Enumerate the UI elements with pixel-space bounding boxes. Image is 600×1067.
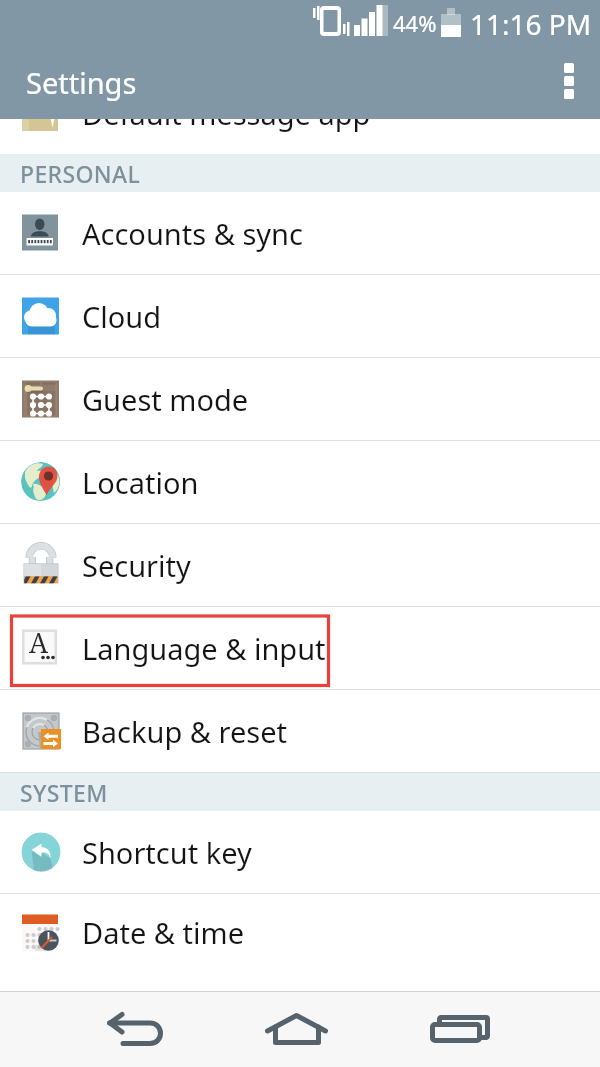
staticText: Settings: [26, 63, 137, 102]
button[interactable]: Recent apps: [424, 991, 496, 1067]
staticText: Date & time: [82, 913, 244, 952]
button[interactable]: Cloud: [0, 275, 600, 357]
staticText: Language & input: [82, 629, 326, 668]
staticText: Backup & reset: [82, 712, 288, 751]
button[interactable]: Security: [0, 524, 600, 606]
staticText: Accounts & sync: [82, 214, 303, 253]
button[interactable]: Shortcut key: [0, 811, 600, 893]
staticText: Shortcut key: [82, 833, 252, 872]
button[interactable]: Backup & reset: [0, 690, 600, 772]
button[interactable]: Default message app: [0, 72, 600, 154]
button[interactable]: A: [0, 607, 600, 689]
button[interactable]: Date & time: [0, 894, 600, 971]
button[interactable]: Guest mode: [0, 358, 600, 440]
staticText: 11:16 PM: [470, 5, 592, 43]
button[interactable]: Accounts & sync: [0, 192, 600, 274]
staticText: Security: [82, 546, 191, 585]
staticText: A: [29, 624, 49, 661]
button[interactable]: Back: [101, 991, 173, 1067]
staticText: 44%: [393, 8, 437, 38]
staticText: Guest mode: [82, 380, 249, 419]
staticText: Location: [82, 463, 199, 502]
staticText: Cloud: [82, 297, 162, 336]
button[interactable]: More options: [538, 45, 600, 119]
staticText: PERSONAL: [20, 158, 141, 189]
button[interactable]: Location: [0, 441, 600, 523]
staticText: SYSTEM: [20, 777, 108, 808]
staticText: Default message app: [82, 94, 371, 133]
button[interactable]: Home: [262, 991, 334, 1067]
